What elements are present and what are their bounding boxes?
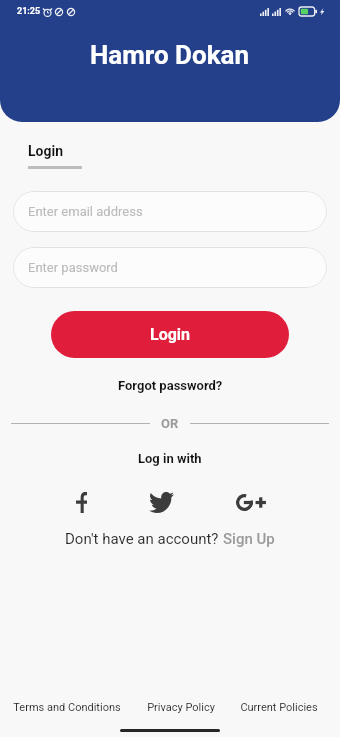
staticText: Don't have an account? <box>65 530 223 548</box>
button[interactable]: Current Policies <box>238 694 320 721</box>
staticText: Enter email address <box>28 204 143 219</box>
button[interactable]: Log in with Google Plus <box>236 487 266 517</box>
button[interactable]: Log in with Twitter <box>149 487 174 517</box>
button[interactable]: Enter password <box>13 247 327 288</box>
staticText: Privacy Policy <box>147 701 215 714</box>
staticText: Log in with <box>138 451 202 466</box>
button[interactable]: Sign Up <box>223 530 275 548</box>
button[interactable]: Forgot password? <box>112 375 229 396</box>
staticText: Terms and Conditions <box>13 701 121 714</box>
button[interactable]: Privacy Policy <box>145 694 217 721</box>
button[interactable]: Login <box>28 143 64 159</box>
staticText: OR <box>161 416 179 431</box>
button[interactable]: Terms and Conditions <box>11 694 123 721</box>
staticText: Login <box>150 325 191 344</box>
staticText: Enter password <box>28 260 118 275</box>
staticText: Hamro Dokan <box>90 40 250 70</box>
button[interactable]: Login <box>51 311 289 358</box>
button[interactable]: Enter email address <box>13 191 327 232</box>
staticText: 21:25 <box>17 6 41 17</box>
button[interactable]: Log in with Facebook <box>76 487 87 517</box>
staticText: Current Policies <box>240 701 318 714</box>
